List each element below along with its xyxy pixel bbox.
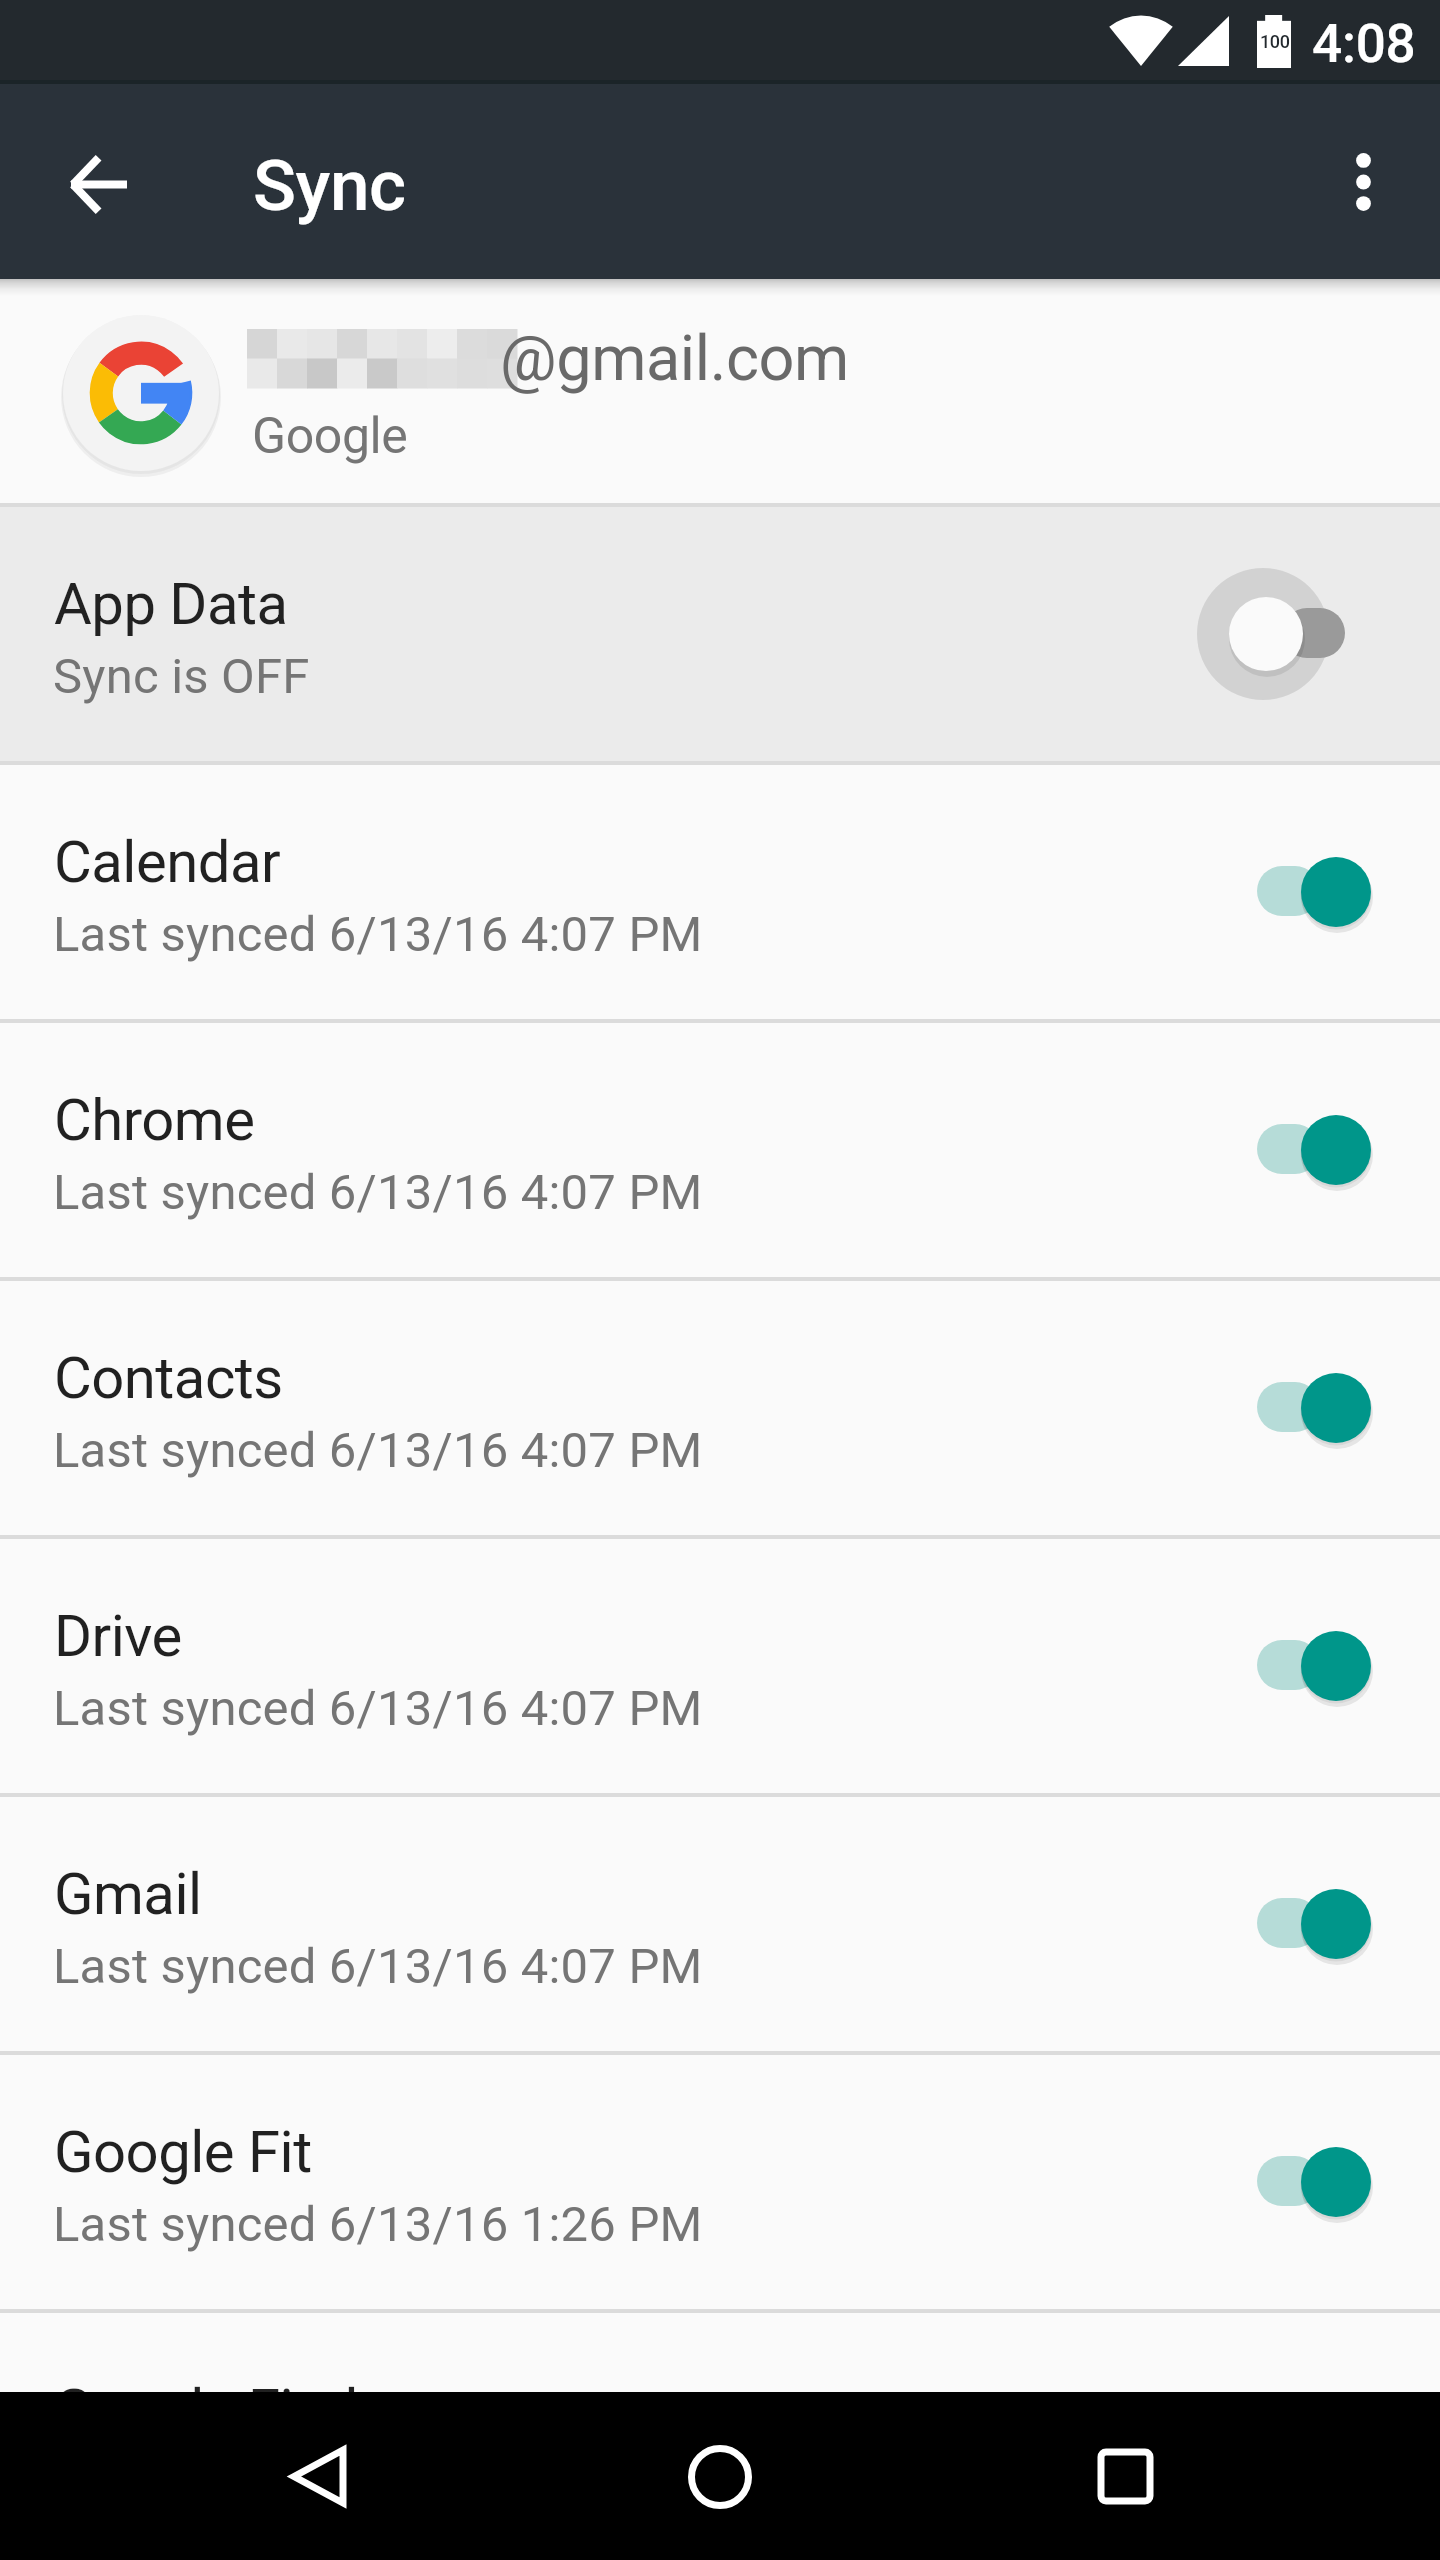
staticText: Sync is OFF — [53, 648, 310, 705]
staticText: Calendar — [54, 828, 281, 896]
button[interactable]: Google Fit — [0, 2051, 1440, 2309]
button[interactable]: Contacts sync on — [1232, 1333, 1382, 1483]
button[interactable]: Home — [660, 2417, 780, 2537]
staticText: Last synced 6/13/16 1:26 PM — [53, 2196, 703, 2253]
button[interactable]: Chrome — [0, 1019, 1440, 1277]
staticText: 100 — [1260, 31, 1290, 52]
button[interactable]: Contacts — [0, 1277, 1440, 1535]
button[interactable]: Recent apps — [1065, 2416, 1185, 2536]
staticText: Last synced 6/13/16 4:07 PM — [53, 1164, 703, 1221]
button[interactable]: Google Fit data sync on — [1232, 2365, 1382, 2515]
staticText: Google Fit data — [54, 2376, 439, 2444]
staticText: Google — [252, 407, 408, 466]
button[interactable]: Navigate up — [43, 129, 153, 239]
staticText: Contacts — [54, 1344, 283, 1412]
staticText: 4:08 — [1312, 13, 1416, 75]
button[interactable]: App Data — [0, 503, 1440, 761]
button[interactable]: Drive sync on — [1232, 1591, 1382, 1741]
button[interactable]: Back — [258, 2416, 378, 2536]
button[interactable]: Drive — [0, 1535, 1440, 1793]
staticText: Last synced 6/13/16 4:07 PM — [53, 1680, 703, 1737]
button[interactable]: @gmail.com — [0, 279, 1440, 503]
staticText: Chrome — [54, 1086, 255, 1154]
staticText: Gmail — [54, 1860, 202, 1928]
button[interactable]: Chrome sync on — [1232, 1075, 1382, 1225]
staticText: App Data — [54, 570, 288, 638]
staticText: @gmail.com — [500, 322, 849, 396]
button[interactable]: Calendar sync on — [1232, 817, 1382, 967]
staticText: Google Fit — [54, 2118, 312, 2186]
button[interactable]: Gmail sync on — [1232, 1849, 1382, 1999]
button[interactable]: Google Fit data — [0, 2309, 1440, 2560]
button[interactable]: Calendar — [0, 761, 1440, 1019]
staticText: Sync — [253, 144, 406, 227]
staticText: Drive — [54, 1602, 182, 1670]
button[interactable]: Google Fit sync on — [1232, 2107, 1382, 2257]
staticText: Last synced 6/13/16 4:07 PM — [53, 906, 703, 963]
button[interactable]: More options — [1308, 127, 1418, 237]
staticText: Last synced 6/13/16 4:07 PM — [53, 1422, 703, 1479]
button[interactable]: App Data sync off — [1232, 559, 1382, 709]
staticText: Last synced 6/13/16 4:07 PM — [53, 1938, 703, 1995]
staticText: Last synced 6/13/16 1:26 PM — [53, 2454, 703, 2511]
button[interactable]: Gmail — [0, 1793, 1440, 2051]
